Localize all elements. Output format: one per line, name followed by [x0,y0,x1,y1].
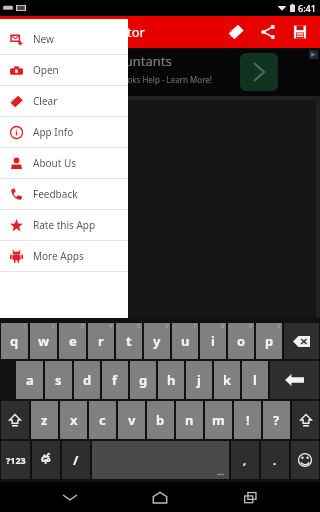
staticText: New [33,32,54,46]
staticText: About Us [33,156,77,170]
staticText: . [273,453,277,468]
button[interactable]: Save [284,16,316,48]
button[interactable]: . [261,441,289,479]
button[interactable]: App Info [0,117,128,147]
button[interactable]: Hide keyboard [50,482,90,512]
staticText: ?123 [6,454,26,466]
button[interactable]: e [59,323,86,359]
staticText: 5 [137,323,140,330]
button[interactable]: ! [234,401,261,439]
button[interactable]: Language [32,441,60,479]
staticText: t [126,332,132,350]
button[interactable]: Open navigation drawer [0,16,32,48]
staticText: m [212,411,225,429]
button[interactable]: Emoji [291,441,319,479]
button[interactable]: h [158,361,184,399]
staticText: c [99,411,106,429]
staticText: More Apps [33,249,84,263]
staticText: 3 [81,323,84,330]
button[interactable]: Share [252,16,284,48]
button[interactable]: Recent apps [230,482,270,512]
button[interactable]: w [30,323,57,359]
button[interactable]: New [0,24,128,54]
staticText: Open [33,63,59,77]
staticText: q [10,332,19,350]
button[interactable]: g [130,361,156,399]
staticText: e [69,332,77,350]
button[interactable]: s [45,361,72,399]
staticText: 9 [249,323,252,330]
staticText: y [153,332,161,350]
staticText: d [83,371,92,389]
button[interactable]: c [89,401,116,439]
button[interactable]: i [200,323,226,359]
button[interactable]: About Us [0,148,128,178]
staticText: 2 [52,323,55,330]
staticText: Telugu Editor [64,23,145,41]
staticText: ! [246,411,250,429]
staticText: 6 [165,323,168,330]
staticText: Rate this App [33,218,96,232]
button[interactable]: , [231,441,259,479]
staticText: 7 [193,323,196,330]
staticText: i [211,332,215,350]
button[interactable]: n [176,401,203,439]
staticText: s [55,371,62,389]
button[interactable]: f [102,361,128,399]
button[interactable]: o [228,323,254,359]
staticText: 4 [109,323,112,330]
staticText: p [265,332,274,350]
staticText: r [98,332,104,350]
button[interactable]: t [116,323,142,359]
button[interactable]: / [62,441,90,479]
staticText: 8 [221,323,224,330]
button[interactable]: u [172,323,198,359]
staticText: u [181,332,190,350]
staticText: n [185,411,194,429]
button[interactable]: r [88,323,114,359]
button[interactable]: Clear [0,86,128,116]
button[interactable]: p [256,323,282,359]
button[interactable]: v [118,401,145,439]
button[interactable]: d [74,361,100,399]
button[interactable]: j [186,361,212,399]
staticText: h [167,371,176,389]
button[interactable]: Ad action [240,53,278,91]
button[interactable]: ? [263,401,290,439]
button[interactable]: Shift [1,401,29,439]
button[interactable]: Open [0,55,128,85]
staticText: z [41,411,48,429]
staticText: w [38,332,50,350]
button[interactable]: Clear [220,16,252,48]
button[interactable]: Rate this App [0,210,128,240]
staticText: f [112,371,118,389]
button[interactable]: k [214,361,240,399]
button[interactable]: Enter [270,361,319,399]
button[interactable]: l [242,361,268,399]
button[interactable]: Home [140,482,180,512]
staticText: 0 [277,323,280,330]
staticText: g [139,371,148,389]
staticText: ? [273,411,280,429]
staticText: ఢ [41,452,51,468]
staticText: o [237,332,246,350]
button[interactable]: Shift [292,401,319,439]
button[interactable]: a [16,361,43,399]
staticText: / [73,451,79,469]
staticText: QuickBooks Help - Learn More! [96,74,213,85]
button[interactable]: z [31,401,58,439]
button[interactable]: x [60,401,87,439]
button[interactable]: b [147,401,174,439]
staticText: l [253,371,257,389]
staticText: Clear [33,94,58,108]
button[interactable]: q [1,323,28,359]
button[interactable]: m [205,401,232,439]
staticText: x [70,411,78,429]
button[interactable]: More Apps [0,241,128,271]
button[interactable]: Backspace [284,323,319,359]
staticText: 1 [23,323,26,330]
button[interactable]: y [144,323,170,359]
button[interactable]: ?123 [1,441,30,479]
button[interactable]: Feedback [0,179,128,209]
